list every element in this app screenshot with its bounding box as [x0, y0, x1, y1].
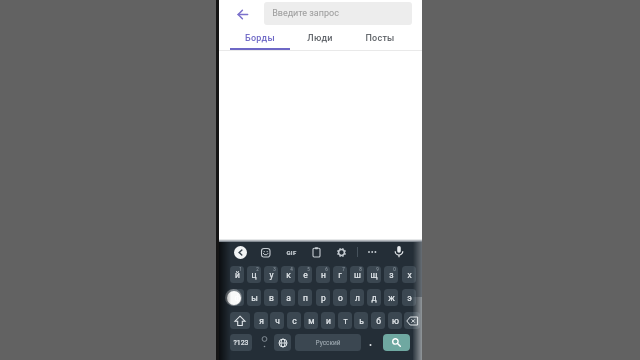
button[interactable]: х — [402, 266, 416, 283]
button[interactable]: ы — [247, 289, 261, 306]
button[interactable] — [234, 246, 247, 259]
staticText: р — [321, 293, 326, 303]
button[interactable]: м — [304, 312, 318, 329]
button[interactable]: о — [333, 289, 347, 306]
staticText: о — [338, 293, 343, 303]
staticText: 1 — [239, 267, 242, 272]
staticText: 5 — [307, 267, 310, 272]
staticText: э — [407, 293, 412, 303]
staticText: й — [235, 270, 240, 280]
button[interactable]: б — [371, 312, 385, 329]
button[interactable]: ш — [350, 266, 364, 283]
button[interactable] — [230, 312, 250, 329]
staticText: GIF — [286, 249, 297, 256]
button[interactable]: ц — [247, 266, 261, 283]
button[interactable]: п — [298, 289, 312, 306]
button[interactable]: л — [350, 289, 364, 306]
button[interactable]: я — [254, 312, 268, 329]
button[interactable]: у — [264, 266, 278, 283]
staticText: ц — [251, 270, 257, 280]
staticText: ы — [251, 293, 258, 303]
button[interactable]: в — [264, 289, 278, 306]
staticText: Люди — [307, 33, 333, 44]
button[interactable]: Борды — [230, 28, 290, 49]
staticText: 2 — [256, 267, 259, 272]
staticText: ж — [388, 293, 395, 303]
staticText: ю — [392, 316, 399, 326]
staticText: я — [259, 316, 264, 326]
button[interactable] — [312, 247, 321, 258]
staticText: г — [338, 270, 342, 280]
staticText: л — [355, 293, 360, 303]
staticText: ф — [234, 293, 241, 303]
button[interactable] — [257, 334, 272, 351]
staticText: с — [292, 316, 297, 326]
button[interactable]: г — [333, 266, 347, 283]
staticText: 6 — [325, 267, 328, 272]
staticText: ?123 — [233, 339, 249, 347]
staticText: в — [269, 293, 274, 303]
staticText: 3 — [273, 267, 276, 272]
button[interactable]: GIF — [283, 245, 300, 259]
staticText: з — [389, 270, 394, 280]
staticText: п — [303, 293, 308, 303]
button[interactable] — [404, 312, 420, 329]
staticText: Введите запрос — [272, 8, 339, 19]
staticText: ч — [275, 316, 280, 326]
button[interactable]: ь — [354, 312, 368, 329]
button[interactable]: н — [316, 266, 330, 283]
button[interactable]: е — [298, 266, 312, 283]
button[interactable]: э — [402, 289, 416, 306]
staticText: Борды — [245, 33, 275, 44]
button[interactable]: ч — [270, 312, 284, 329]
button[interactable]: Русский — [295, 334, 361, 351]
staticText: 9 — [376, 267, 379, 272]
button[interactable]: Посты — [350, 28, 410, 49]
staticText: 7 — [342, 267, 345, 272]
button[interactable]: Введите запрос — [264, 2, 412, 25]
button[interactable]: т — [338, 312, 352, 329]
button[interactable]: д — [367, 289, 381, 306]
staticText: щ — [370, 270, 378, 280]
button[interactable]: ?123 — [230, 334, 252, 351]
staticText: Русский — [315, 339, 341, 347]
button[interactable] — [393, 245, 405, 259]
staticText: 0 — [393, 267, 396, 272]
button[interactable]: ф — [230, 289, 244, 306]
staticText: 4 — [290, 267, 293, 272]
button[interactable] — [232, 4, 253, 25]
staticText: н — [321, 270, 326, 280]
staticText: д — [371, 293, 377, 303]
button[interactable]: й — [230, 266, 244, 283]
button[interactable]: к — [281, 266, 295, 283]
staticText: х — [407, 270, 412, 280]
staticText: 8 — [359, 267, 362, 272]
staticText: у — [269, 270, 274, 280]
button[interactable]: р — [316, 289, 330, 306]
staticText: Посты — [365, 33, 395, 44]
button[interactable]: з — [384, 266, 398, 283]
staticText: б — [376, 316, 381, 326]
button[interactable]: щ — [367, 266, 381, 283]
button[interactable] — [364, 334, 377, 351]
staticText: т — [343, 316, 348, 326]
staticText: ь — [359, 316, 364, 326]
button[interactable]: ж — [384, 289, 398, 306]
button[interactable]: ю — [388, 312, 402, 329]
button[interactable]: а — [281, 289, 295, 306]
button[interactable] — [274, 334, 291, 351]
staticText: м — [308, 316, 315, 326]
button[interactable]: Люди — [290, 28, 350, 49]
staticText: к — [286, 270, 291, 280]
button[interactable]: и — [321, 312, 335, 329]
button[interactable] — [383, 334, 410, 351]
button[interactable]: с — [287, 312, 301, 329]
staticText: и — [326, 316, 331, 326]
staticText: е — [303, 270, 308, 280]
button[interactable] — [261, 248, 271, 258]
staticText: а — [286, 293, 291, 303]
button[interactable] — [336, 247, 347, 258]
staticText: ш — [354, 270, 361, 280]
button[interactable] — [366, 246, 379, 258]
